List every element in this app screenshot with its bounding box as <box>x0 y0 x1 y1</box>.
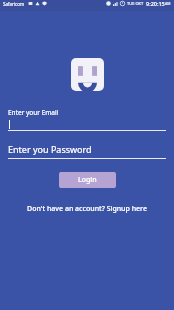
staticText: Enter you Password <box>8 143 92 155</box>
button[interactable]: Don't have an account? Signup here <box>27 204 147 214</box>
staticText: Enter your Email <box>8 108 59 117</box>
button[interactable] <box>8 120 166 131</box>
staticText: 9:20:15 <box>146 0 165 7</box>
staticText: TUE OKT <box>127 1 144 6</box>
staticText: Login <box>78 175 97 185</box>
button[interactable]: Login <box>59 172 116 188</box>
staticText: Don't have an account? Signup here <box>27 204 147 214</box>
staticText: Safaricom <box>3 1 25 7</box>
staticText: AM <box>165 1 171 6</box>
button[interactable]: Enter you Password <box>8 143 166 159</box>
